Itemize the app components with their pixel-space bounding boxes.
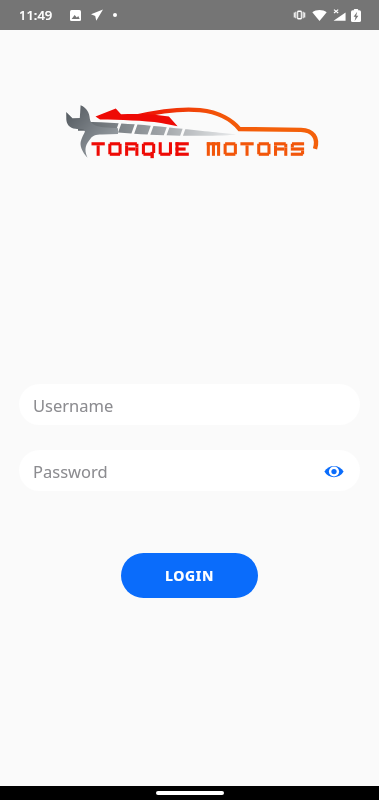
button[interactable]: Username bbox=[19, 384, 360, 425]
staticText: 11:49 bbox=[19, 6, 53, 24]
button[interactable]: LOGIN bbox=[121, 553, 258, 598]
staticText: Username bbox=[33, 394, 114, 416]
button[interactable]: Show password bbox=[321, 458, 347, 484]
staticText: LOGIN bbox=[165, 566, 215, 585]
staticText: Password bbox=[33, 460, 108, 482]
button[interactable]: Password bbox=[19, 450, 360, 491]
